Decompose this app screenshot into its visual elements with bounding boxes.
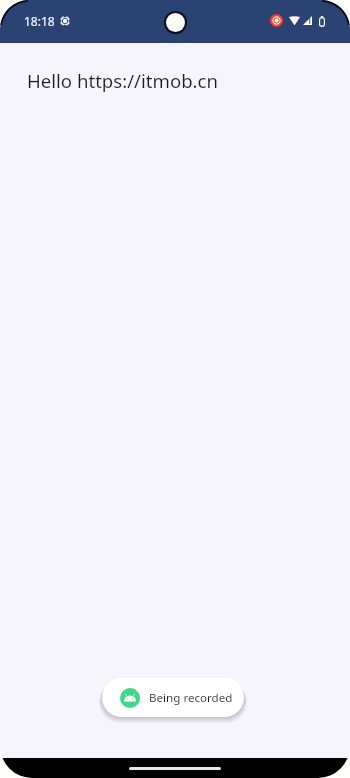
button[interactable]: Home: [129, 767, 221, 770]
other: Recording: [270, 14, 283, 27]
other: Mobile signal: [303, 16, 312, 25]
staticText: Hello https://itmob.cn: [27, 68, 218, 93]
staticText: Being recorded: [149, 690, 233, 706]
staticText: 18:18: [24, 13, 55, 29]
other: Battery: [319, 16, 325, 27]
button[interactable]: Being recorded: [102, 678, 244, 717]
other: Wi-Fi: [289, 16, 300, 25]
other: Screen recording: [60, 16, 70, 26]
